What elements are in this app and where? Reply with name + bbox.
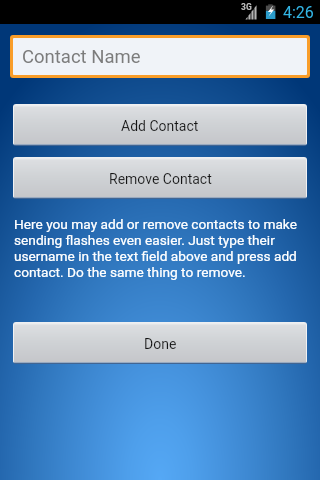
staticText: Here you may add or remove contacts to m…	[14, 216, 308, 280]
staticText: Remove Contact	[109, 171, 212, 187]
button[interactable]: Add Contact	[13, 104, 307, 146]
button[interactable]: Done	[13, 322, 307, 364]
button[interactable]: Remove Contact	[13, 157, 307, 199]
staticText: Add Contact	[121, 118, 199, 134]
staticText: 3G	[241, 2, 252, 12]
staticText: Contact Name	[22, 46, 141, 68]
staticText: Done	[144, 336, 177, 352]
button[interactable]: Contact Name	[10, 35, 310, 78]
staticText: 4:26	[283, 3, 314, 22]
